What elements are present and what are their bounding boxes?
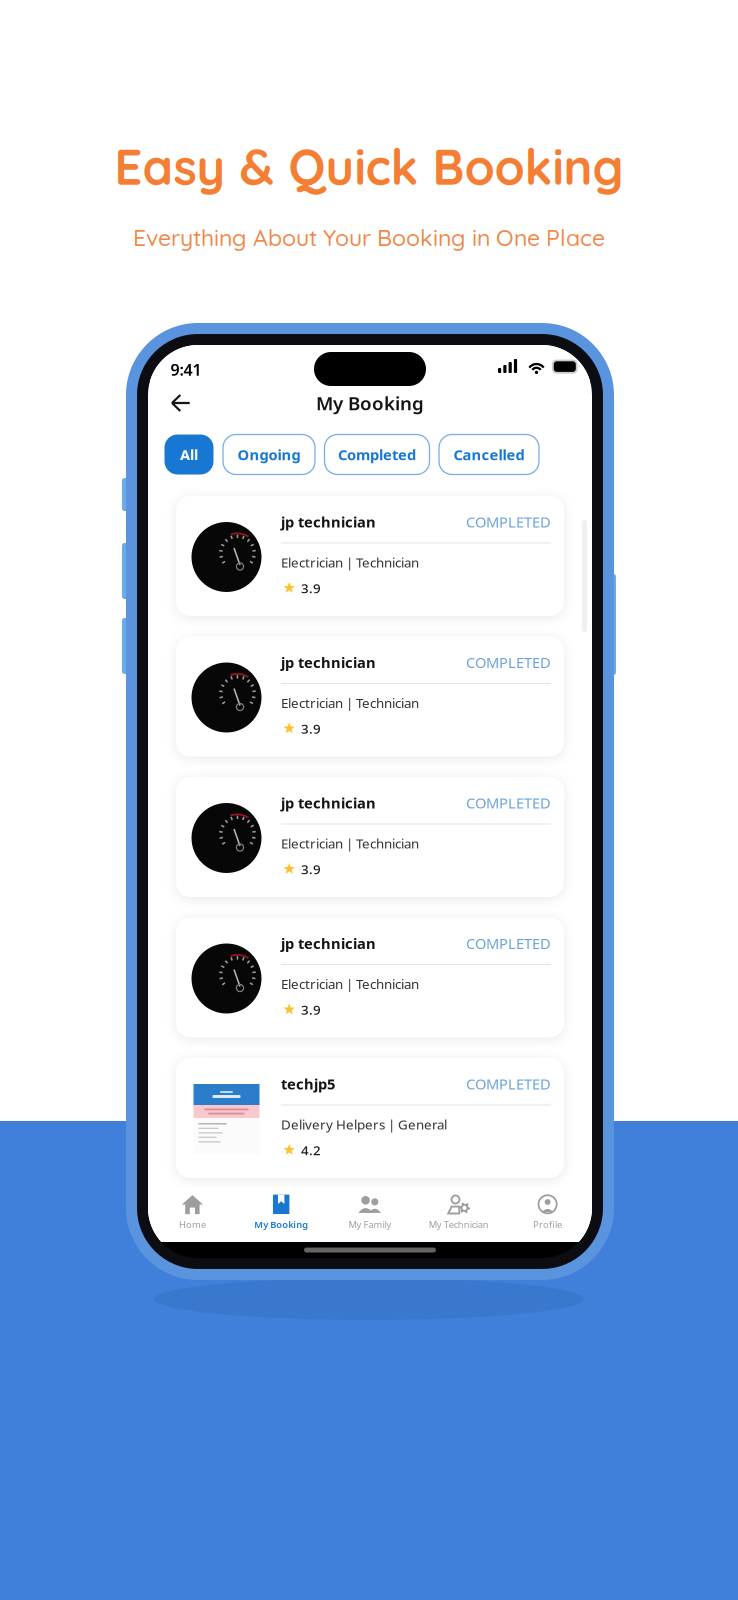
staticText: COMPLETED <box>466 512 551 531</box>
staticText: Ongoing <box>237 445 300 464</box>
staticText: Electrician | Technician <box>281 553 419 571</box>
button[interactable]: Ongoing <box>223 434 315 474</box>
staticText: Completed <box>338 445 416 464</box>
staticText: 9:41 <box>170 359 201 380</box>
staticText: COMPLETED <box>466 1074 551 1093</box>
staticText: 3.9 <box>301 579 321 597</box>
staticText: 3.9 <box>301 860 321 878</box>
button[interactable]: jp technician <box>176 777 564 897</box>
button[interactable]: My Technician <box>414 1189 503 1241</box>
button[interactable]: techjp5 <box>176 1058 564 1178</box>
staticText: 4.2 <box>301 1141 321 1159</box>
staticText: COMPLETED <box>466 652 551 672</box>
staticText: jp technician <box>281 512 376 531</box>
staticText: Delivery Helpers | General <box>281 1115 447 1133</box>
staticText: Everything About Your Booking in One Pla… <box>133 223 605 252</box>
button[interactable]: Home <box>148 1189 237 1241</box>
staticText: jp technician <box>281 933 376 953</box>
staticText: 3.9 <box>301 720 321 737</box>
staticText: My Booking <box>316 391 424 415</box>
staticText: Electrician | Technician <box>281 834 419 852</box>
staticText: Electrician | Technician <box>281 975 419 993</box>
button[interactable]: All <box>164 434 213 474</box>
staticText: Profile <box>533 1218 562 1231</box>
staticText: My Family <box>348 1218 391 1231</box>
staticText: COMPLETED <box>466 793 551 812</box>
button[interactable]: My Family <box>326 1189 414 1241</box>
staticText: techjp5 <box>281 1074 335 1093</box>
button[interactable]: Completed <box>324 434 429 474</box>
staticText: All <box>180 445 198 464</box>
staticText: Easy & Quick Booking <box>114 136 623 197</box>
staticText: My Technician <box>429 1218 489 1231</box>
staticText: Electrician | Technician <box>281 694 419 712</box>
staticText: My Booking <box>254 1218 308 1231</box>
button[interactable]: jp technician <box>176 636 564 756</box>
staticText: jp technician <box>281 793 376 812</box>
button[interactable]: Profile <box>503 1189 592 1241</box>
staticText: Home <box>179 1218 206 1231</box>
button[interactable]: jp technician <box>176 917 564 1037</box>
staticText: 3.9 <box>301 1001 321 1018</box>
button[interactable]: Cancelled <box>439 434 539 474</box>
staticText: COMPLETED <box>466 933 551 953</box>
button[interactable]: Back <box>148 385 215 421</box>
button[interactable]: My Booking <box>237 1189 326 1241</box>
staticText: jp technician <box>281 652 376 672</box>
staticText: Cancelled <box>453 445 524 464</box>
button[interactable]: jp technician <box>176 496 564 616</box>
